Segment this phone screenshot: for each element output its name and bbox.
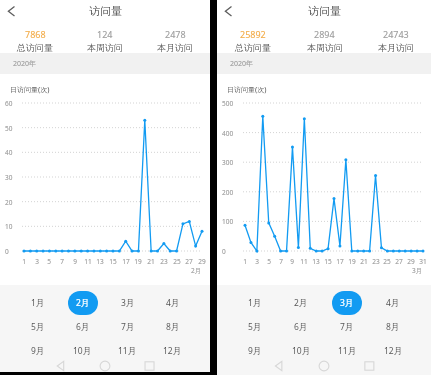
staticText: 3 bbox=[35, 257, 39, 266]
button[interactable]: Back bbox=[219, 2, 237, 20]
staticText: 12月 bbox=[384, 345, 403, 357]
staticText: 15 bbox=[324, 257, 332, 266]
staticText: 7月 bbox=[340, 321, 354, 333]
staticText: 访问量 bbox=[89, 4, 122, 18]
staticText: 0 bbox=[222, 247, 226, 256]
staticText: 13 bbox=[312, 257, 320, 266]
staticText: 3月 bbox=[121, 297, 135, 309]
button[interactable]: 6月 bbox=[278, 315, 324, 339]
button[interactable]: 24743 bbox=[360, 22, 431, 53]
staticText: 9 bbox=[73, 257, 77, 266]
staticText: 6月 bbox=[294, 321, 308, 333]
staticText: 1月 bbox=[248, 297, 262, 309]
staticText: 2月 bbox=[191, 266, 202, 275]
staticText: 7月 bbox=[121, 321, 135, 333]
staticText: 100 bbox=[222, 217, 234, 226]
staticText: 24743 bbox=[383, 28, 409, 40]
staticText: 1月 bbox=[31, 297, 45, 309]
staticText: 60 bbox=[5, 99, 13, 108]
staticText: 9月 bbox=[31, 345, 45, 357]
button[interactable]: 1月 bbox=[15, 291, 60, 315]
staticText: 2478 bbox=[165, 28, 186, 40]
staticText: 2月 bbox=[294, 297, 308, 309]
staticText: 25 bbox=[173, 257, 181, 266]
staticText: 5 bbox=[47, 257, 51, 266]
staticText: 2月 bbox=[76, 297, 90, 309]
staticText: 11 bbox=[84, 257, 92, 266]
staticText: 25892 bbox=[240, 28, 266, 40]
staticText: 本周访问 bbox=[87, 42, 123, 53]
staticText: 5月 bbox=[31, 321, 45, 333]
staticText: 30 bbox=[5, 173, 13, 182]
button[interactable]: 3月 bbox=[105, 291, 150, 315]
button[interactable]: 8月 bbox=[370, 315, 416, 339]
button[interactable]: 2月 bbox=[278, 291, 324, 315]
button[interactable]: 1月 bbox=[232, 291, 278, 315]
button[interactable]: 10月 bbox=[278, 339, 324, 363]
button[interactable]: 2月 bbox=[60, 291, 105, 315]
staticText: 3月 bbox=[412, 266, 423, 275]
staticText: 40 bbox=[5, 148, 13, 157]
staticText: 19 bbox=[134, 257, 142, 266]
button[interactable]: 5月 bbox=[15, 315, 60, 339]
staticText: 13 bbox=[96, 257, 104, 266]
button[interactable]: 9月 bbox=[232, 339, 278, 363]
staticText: 29 bbox=[198, 257, 206, 266]
button[interactable]: 4月 bbox=[150, 291, 195, 315]
staticText: 日访问量(次) bbox=[227, 85, 267, 95]
button[interactable]: 7868 bbox=[0, 22, 70, 53]
staticText: 本月访问 bbox=[157, 42, 193, 53]
button[interactable]: Back bbox=[2, 2, 20, 20]
button[interactable]: 7月 bbox=[105, 315, 150, 339]
staticText: 17 bbox=[336, 257, 344, 266]
button[interactable]: 8月 bbox=[150, 315, 195, 339]
button[interactable]: 11月 bbox=[324, 339, 370, 363]
staticText: 10月 bbox=[292, 345, 311, 357]
staticText: 9 bbox=[290, 257, 294, 266]
staticText: 21 bbox=[360, 257, 368, 266]
staticText: 11 bbox=[300, 257, 308, 266]
button[interactable]: 9月 bbox=[15, 339, 60, 363]
staticText: 4月 bbox=[166, 297, 180, 309]
button[interactable]: 25892 bbox=[217, 22, 289, 53]
staticText: 11月 bbox=[118, 345, 137, 357]
staticText: 日访问量(次) bbox=[10, 85, 50, 95]
button[interactable]: 12月 bbox=[370, 339, 416, 363]
staticText: 20 bbox=[5, 198, 13, 207]
staticText: 124 bbox=[97, 28, 113, 40]
staticText: 6月 bbox=[76, 321, 90, 333]
staticText: 31 bbox=[419, 257, 427, 266]
staticText: 300 bbox=[222, 158, 234, 167]
button[interactable]: 6月 bbox=[60, 315, 105, 339]
staticText: 21 bbox=[147, 257, 155, 266]
button[interactable]: 124 bbox=[70, 22, 140, 53]
staticText: 3月 bbox=[340, 297, 354, 309]
button[interactable]: 7月 bbox=[324, 315, 370, 339]
staticText: 27 bbox=[395, 257, 403, 266]
button[interactable]: 3月 bbox=[324, 291, 370, 315]
staticText: 7868 bbox=[25, 28, 46, 40]
staticText: 400 bbox=[222, 129, 234, 138]
staticText: 27 bbox=[185, 257, 193, 266]
button[interactable]: 10月 bbox=[60, 339, 105, 363]
staticText: 1 bbox=[243, 257, 247, 266]
button[interactable]: 5月 bbox=[232, 315, 278, 339]
button[interactable]: 2478 bbox=[140, 22, 210, 53]
staticText: 总访问量 bbox=[235, 42, 271, 53]
staticText: 5月 bbox=[248, 321, 262, 333]
staticText: 7 bbox=[60, 257, 64, 266]
staticText: 总访问量 bbox=[17, 42, 53, 53]
button[interactable]: 4月 bbox=[370, 291, 416, 315]
staticText: 19 bbox=[348, 257, 356, 266]
staticText: 500 bbox=[222, 99, 234, 108]
staticText: 11月 bbox=[338, 345, 357, 357]
staticText: 10 bbox=[5, 222, 13, 231]
button[interactable]: 12月 bbox=[150, 339, 195, 363]
button[interactable]: 2894 bbox=[289, 22, 360, 53]
staticText: 50 bbox=[5, 124, 13, 133]
staticText: 7 bbox=[279, 257, 283, 266]
staticText: 10月 bbox=[73, 345, 92, 357]
staticText: 9月 bbox=[248, 345, 262, 357]
staticText: 29 bbox=[407, 257, 415, 266]
button[interactable]: 11月 bbox=[105, 339, 150, 363]
